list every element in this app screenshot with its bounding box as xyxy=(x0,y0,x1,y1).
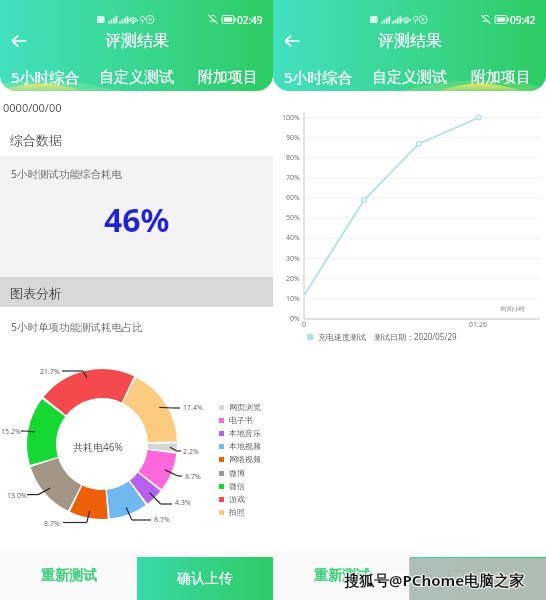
staticText: 评测结果 xyxy=(105,31,169,51)
staticText: 8.7% xyxy=(44,519,60,529)
staticText: 游戏 xyxy=(229,494,245,504)
button[interactable]: 确认上传 xyxy=(410,557,546,600)
button[interactable]: 5小时综合 xyxy=(0,63,91,91)
staticText: 自定义测试 xyxy=(372,68,447,87)
staticText: 01:26 xyxy=(469,320,487,330)
staticText: 重新测试 xyxy=(41,567,97,585)
staticText: 确认上传 xyxy=(450,570,506,588)
button[interactable]: Back xyxy=(273,24,311,58)
staticText: 21.7% xyxy=(40,367,60,377)
staticText: 10% xyxy=(286,294,300,304)
button[interactable]: 本地视频 xyxy=(219,440,261,452)
staticText: 20% xyxy=(286,274,300,284)
staticText: 微博 xyxy=(229,468,245,478)
staticText: 搜狐号@PChome电脑之家 xyxy=(343,570,524,590)
button[interactable]: 5小时综合 xyxy=(273,63,364,91)
staticText: 测试日期：2020/05/29 xyxy=(374,331,457,342)
staticText: 0000/00/00 xyxy=(3,100,62,115)
staticText: 共耗电46% xyxy=(73,440,123,454)
staticText: 0 xyxy=(302,320,307,330)
staticText: 60% xyxy=(286,193,300,203)
staticText: 图表分析 xyxy=(10,285,62,301)
staticText: 评测结果 xyxy=(378,31,442,51)
staticText: 附加项目 xyxy=(198,68,258,87)
staticText: 8.7% xyxy=(185,472,201,482)
staticText: 5小时测试功能综合耗电 xyxy=(11,167,123,181)
button[interactable]: 重新测试 xyxy=(273,551,410,600)
button[interactable]: Back xyxy=(0,24,38,58)
staticText: 搜狐号@PChome电脑之家 xyxy=(344,571,525,591)
staticText: 90% xyxy=(286,133,300,143)
staticText: 重新测试 xyxy=(314,567,370,585)
button[interactable]: 网络视频 xyxy=(219,453,261,465)
button[interactable]: 附加项目 xyxy=(455,63,546,91)
button[interactable]: 微博 xyxy=(219,467,245,479)
button[interactable]: 自定义测试 xyxy=(91,63,182,91)
staticText: 附加项目 xyxy=(471,68,531,87)
staticText: 40% xyxy=(286,233,300,243)
button[interactable]: 本地音乐 xyxy=(219,427,261,439)
staticText: 100% xyxy=(282,113,300,123)
button[interactable]: 拍照 xyxy=(219,506,245,518)
staticText: 时间小时 xyxy=(501,305,525,313)
staticText: 5小时综合 xyxy=(284,67,353,87)
staticText: 确认上传 xyxy=(177,570,233,588)
staticText: 30% xyxy=(286,254,300,264)
staticText: 拍照 xyxy=(229,507,245,517)
staticText: 50% xyxy=(286,213,300,223)
staticText: 70% xyxy=(286,173,300,183)
staticText: 46% xyxy=(104,198,170,242)
button[interactable]: 电子书 xyxy=(219,414,253,426)
button[interactable]: 网页浏览 xyxy=(219,401,261,413)
staticText: 2.2% xyxy=(183,447,199,457)
staticText: 综合数据 xyxy=(10,132,62,148)
staticText: 5小时综合 xyxy=(11,67,80,87)
staticText: 本地音乐 xyxy=(229,428,261,438)
staticText: 网页浏览 xyxy=(229,402,261,412)
staticText: 13.0% xyxy=(7,491,27,501)
button[interactable]: 游戏 xyxy=(219,493,245,505)
staticText: 4.3% xyxy=(175,498,191,508)
staticText: 02:49 xyxy=(237,13,263,27)
staticText: 自定义测试 xyxy=(99,68,174,87)
staticText: 电子书 xyxy=(229,415,253,425)
button[interactable]: 微信 xyxy=(219,480,245,492)
button[interactable]: 确认上传 xyxy=(137,557,273,600)
staticText: 80% xyxy=(286,153,300,163)
button[interactable]: 自定义测试 xyxy=(364,63,455,91)
button[interactable]: 重新测试 xyxy=(0,551,137,600)
staticText: 微信 xyxy=(229,481,245,491)
staticText: 5小时单项功能测试耗电占比 xyxy=(11,320,144,334)
staticText: 09:42 xyxy=(510,13,536,27)
staticText: 8.7% xyxy=(154,515,170,525)
staticText: 网络视频 xyxy=(229,454,261,464)
staticText: 搜狐号@PChome电脑之家 xyxy=(344,569,525,589)
staticText: 搜狐号@PChome电脑之家 xyxy=(345,570,526,590)
staticText: 本地视频 xyxy=(229,441,261,451)
staticText: 15.2% xyxy=(1,427,21,437)
staticText: 充电速度测试 xyxy=(318,332,366,342)
staticText: 0% xyxy=(290,314,300,324)
staticText: 搜狐号@PChome电脑之家 xyxy=(344,570,525,590)
button[interactable]: 附加项目 xyxy=(182,63,273,91)
staticText: 17.4% xyxy=(183,403,203,413)
